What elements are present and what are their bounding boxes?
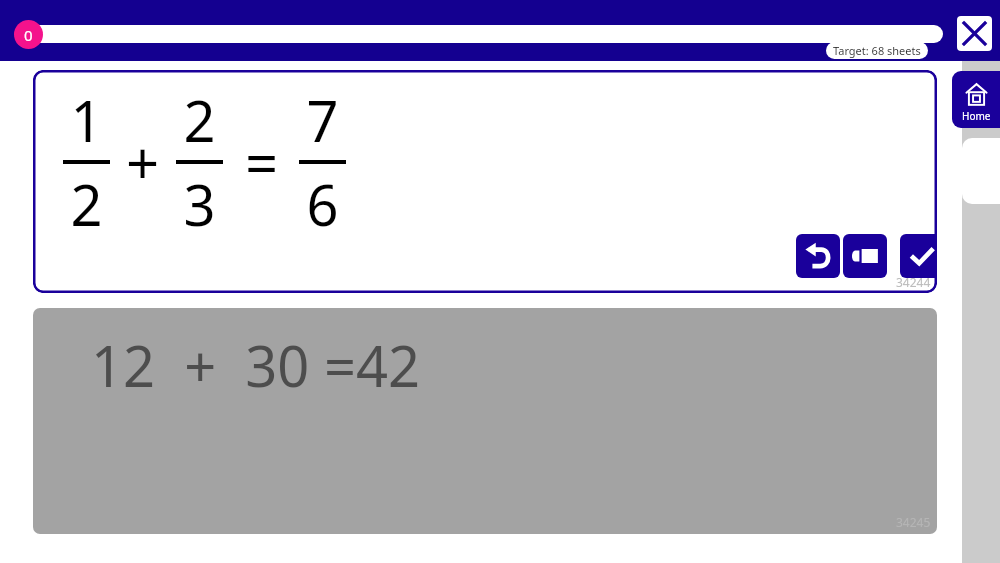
button[interactable]: [962, 138, 1000, 204]
staticText: 0: [24, 25, 33, 45]
staticText: 6: [306, 166, 339, 242]
staticText: 3: [183, 166, 216, 242]
staticText: 34245: [896, 514, 931, 530]
staticText: 7: [306, 82, 339, 158]
staticText: 2: [70, 166, 103, 242]
button[interactable]: 1: [33, 70, 937, 293]
staticText: =: [245, 123, 279, 202]
staticText: +: [126, 123, 160, 202]
staticText: Target: 68 sheets: [833, 43, 921, 58]
staticText: 34244: [896, 274, 931, 290]
staticText: 2: [183, 82, 216, 158]
staticText: 12 + 30 =42: [91, 327, 421, 403]
button[interactable]: 0: [14, 20, 43, 49]
button[interactable]: Confirm: [900, 234, 937, 278]
button[interactable]: 12 + 30 =42: [33, 308, 937, 534]
button[interactable]: Layout: [843, 234, 887, 278]
staticText: Home: [962, 109, 991, 123]
staticText: 1: [70, 82, 103, 158]
button[interactable]: Close: [957, 16, 992, 51]
button[interactable]: [30, 25, 943, 43]
button[interactable]: Undo: [796, 234, 840, 278]
button[interactable]: Home: [952, 71, 1000, 128]
